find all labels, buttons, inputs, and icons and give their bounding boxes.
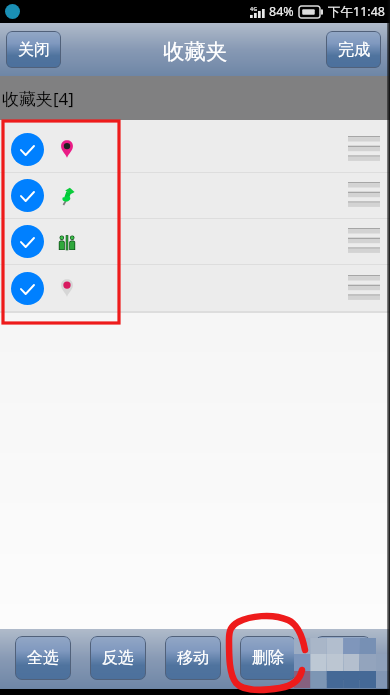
button[interactable]: Reorder (348, 275, 380, 302)
button[interactable]: 移动 (165, 636, 221, 680)
button[interactable]: Selected (0, 120, 390, 172)
button[interactable]: 删除 (240, 636, 296, 680)
button[interactable]: 关闭 (6, 31, 61, 68)
button[interactable]: Selected (11, 133, 44, 166)
staticText: 删除 (252, 648, 284, 668)
staticText: 完成 (338, 40, 370, 60)
button[interactable] (315, 636, 371, 680)
button[interactable]: Reorder (348, 182, 380, 209)
other: App icon (5, 4, 20, 19)
staticText: 4G (250, 5, 258, 12)
button[interactable]: Selected (11, 179, 44, 212)
staticText: 收藏夹[4] (2, 87, 74, 110)
staticText: 84% (269, 3, 294, 20)
button[interactable]: 全选 (15, 636, 71, 680)
staticText: 收藏夹 (163, 38, 228, 65)
button[interactable]: Selected (11, 225, 44, 258)
button[interactable]: 完成 (326, 31, 381, 68)
staticText: 下午11:48 (328, 3, 385, 20)
button[interactable]: Selected (0, 219, 390, 264)
button[interactable]: Selected (0, 265, 390, 311)
button[interactable]: Selected (0, 173, 390, 218)
button[interactable]: Selected (11, 272, 44, 305)
staticText: 移动 (177, 648, 209, 668)
staticText: 反选 (102, 648, 134, 668)
button[interactable]: Reorder (348, 136, 380, 163)
button[interactable]: 反选 (90, 636, 146, 680)
staticText: 全选 (27, 648, 59, 668)
button[interactable]: Reorder (348, 228, 380, 255)
staticText: 关闭 (18, 40, 50, 60)
